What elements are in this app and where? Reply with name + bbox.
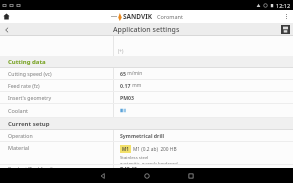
staticText: Current setup xyxy=(8,120,50,128)
staticText: Symmetrical drill xyxy=(120,132,165,139)
staticText: 0.17 xyxy=(120,82,131,89)
staticText: Coolant xyxy=(8,107,29,114)
button[interactable]: Material xyxy=(0,142,293,164)
button[interactable]: Home xyxy=(0,10,13,23)
button[interactable]: Cutting speed (vc) xyxy=(0,68,293,79)
staticText: 12:12 xyxy=(276,2,291,9)
button[interactable]: Home xyxy=(136,168,158,183)
staticText: Application settings xyxy=(113,25,180,35)
button[interactable]: Back xyxy=(0,23,13,36)
staticText: Material xyxy=(8,144,30,151)
button[interactable]: Insert's geometry xyxy=(0,92,293,103)
button[interactable]: Save xyxy=(281,25,290,34)
staticText: Operation xyxy=(8,132,33,139)
staticText: M1 (0.2 ab) 200 HB xyxy=(133,146,177,153)
button[interactable]: Product/Tool family xyxy=(0,165,293,168)
staticText: austenitic, quench hardened xyxy=(120,160,178,164)
staticText: Product/Tool family xyxy=(8,165,56,168)
staticText: m/min xyxy=(126,70,143,77)
staticText: PM03 xyxy=(120,94,135,101)
button[interactable]: Back xyxy=(92,168,114,183)
button[interactable]: Coolant xyxy=(0,104,293,117)
staticText: Cutting data xyxy=(8,58,46,66)
staticText: Cutting speed (vc) xyxy=(8,70,52,77)
staticText: M1 xyxy=(122,146,129,152)
button[interactable]: More options xyxy=(280,10,293,23)
staticText: Coromant xyxy=(157,13,183,20)
staticText: D48 40 xyxy=(120,165,138,168)
button[interactable]: Feed rate (fz) xyxy=(0,80,293,91)
staticText: SANDVIK xyxy=(123,12,153,21)
staticText: Insert's geometry xyxy=(8,94,52,101)
staticText: 65 xyxy=(120,70,126,77)
staticText: Stainless steel xyxy=(120,154,149,160)
button[interactable]: Recent apps xyxy=(180,168,202,183)
staticText: Feed rate (fz) xyxy=(8,82,40,89)
staticText: mm xyxy=(131,82,142,89)
button[interactable]: Operation xyxy=(0,130,293,141)
staticText: (+) xyxy=(118,48,124,54)
